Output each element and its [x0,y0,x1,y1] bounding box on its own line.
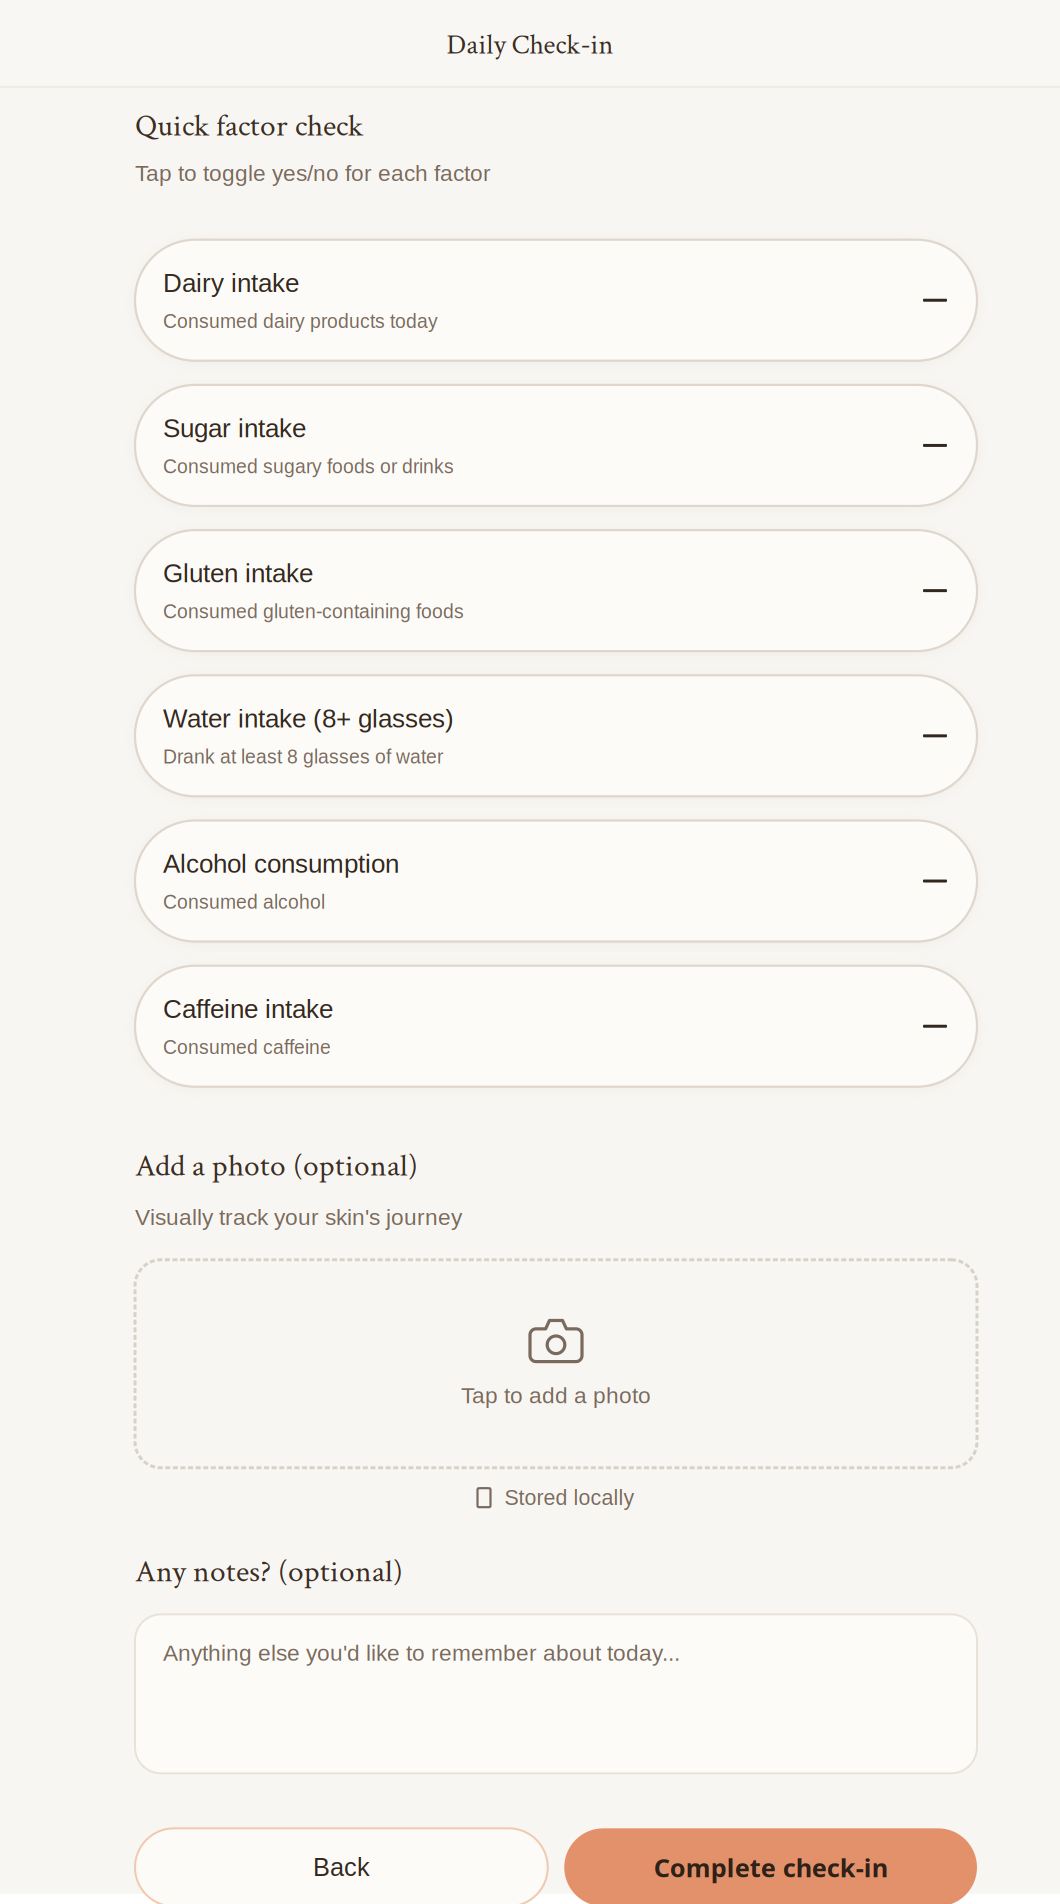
button[interactable]: Water intake (8+ glasses) [135,675,977,796]
staticText: Visually track your skin's journey [135,1204,462,1230]
staticText: Sugar intake [163,414,306,443]
staticText: Any notes? (optional) [135,1552,403,1592]
staticText: Consumed sugary foods or drinks [163,456,454,477]
staticText: Water intake (8+ glasses) [163,704,454,733]
staticText: Anything else you'd like to remember abo… [163,1640,680,1666]
button[interactable]: Alcohol consumption [135,820,977,941]
staticText: Tap to add a photo [461,1383,651,1408]
staticText: Gluten intake [163,559,313,588]
staticText: Quick factor check [135,106,363,146]
staticText: Alcohol consumption [163,849,399,878]
staticText: Daily Check-in [446,27,613,63]
button[interactable]: Caffeine intake [135,966,977,1087]
staticText: Consumed alcohol [163,891,325,913]
staticText: Complete check-in [654,1850,888,1885]
button[interactable]: Back [135,1828,548,1904]
staticText: Consumed dairy products today [163,310,438,332]
button[interactable]: Tap to add a photo [135,1260,977,1468]
staticText: Tap to toggle yes/no for each factor [135,160,491,186]
staticText: Dairy intake [163,268,299,297]
staticText: Back [313,1853,370,1881]
staticText: Caffeine intake [163,994,333,1023]
button[interactable]: Sugar intake [135,385,977,506]
staticText: Add a photo (optional) [135,1146,418,1186]
staticText: Stored locally [504,1486,634,1510]
button[interactable]: Dairy intake [135,240,977,361]
staticText: Consumed caffeine [163,1036,331,1058]
staticText: Consumed gluten-containing foods [163,601,464,622]
button[interactable]: Complete check-in [564,1828,977,1904]
staticText: Drank at least 8 glasses of water [163,746,443,768]
button[interactable]: Gluten intake [135,530,977,651]
